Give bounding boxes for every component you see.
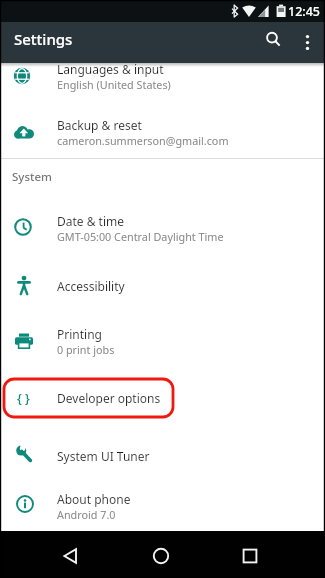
button[interactable] — [0, 313, 325, 369]
staticText: cameron.summerson@gmail.com — [57, 133, 229, 148]
button[interactable] — [0, 431, 325, 478]
staticText: Settings — [14, 29, 73, 49]
staticText: System — [12, 169, 52, 185]
button[interactable] — [296, 26, 320, 50]
button[interactable] — [0, 101, 325, 157]
staticText: Date & time — [57, 213, 125, 229]
button[interactable] — [0, 480, 325, 531]
staticText: GMT-05:00 Central Daylight Time — [57, 229, 224, 244]
staticText: Developer options — [57, 390, 161, 406]
staticText: Printing — [57, 326, 102, 342]
button[interactable] — [261, 26, 285, 50]
button[interactable] — [0, 374, 325, 421]
staticText: { } — [17, 390, 30, 407]
staticText: Android 7.0 — [57, 507, 116, 522]
staticText: Languages & input — [57, 61, 164, 77]
staticText: English (United States) — [57, 77, 171, 92]
button[interactable] — [0, 58, 325, 91]
button[interactable] — [0, 198, 325, 254]
staticText: System UI Tuner — [57, 448, 150, 464]
staticText: 0 print jobs — [57, 342, 115, 357]
staticText: About phone — [57, 491, 131, 507]
staticText: Accessibility — [57, 278, 125, 294]
staticText: Backup & reset — [57, 117, 142, 133]
staticText: 12:45 — [288, 3, 321, 20]
button[interactable] — [54, 540, 86, 572]
button[interactable] — [0, 262, 325, 309]
button[interactable] — [234, 540, 266, 572]
button[interactable] — [145, 540, 177, 572]
